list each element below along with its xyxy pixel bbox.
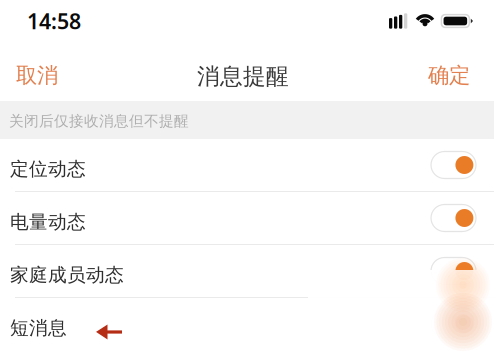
staticText: 取消 (16, 62, 58, 89)
staticText: 家庭成员动态 (10, 263, 124, 286)
button[interactable]: 短消息 (0, 298, 494, 350)
staticText: 定位动态 (10, 157, 86, 180)
staticText: 短消息 (10, 316, 67, 339)
button[interactable]: 确定 (428, 50, 470, 93)
button[interactable]: 电量动态 (0, 192, 494, 244)
button[interactable]: 定位动态 (0, 139, 494, 191)
staticText: 14:58 (27, 7, 81, 35)
staticText: 关闭后仅接收消息但不提醒 (9, 112, 189, 130)
staticText: 电量动态 (10, 210, 86, 233)
button[interactable]: 家庭成员动态 (0, 245, 494, 297)
staticText: 消息提醒 (197, 63, 289, 90)
button[interactable]: 取消 (16, 50, 58, 93)
staticText: 确定 (428, 62, 470, 89)
